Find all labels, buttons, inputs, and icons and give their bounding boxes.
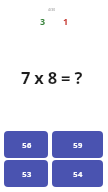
staticText: 59 xyxy=(73,140,83,150)
staticText: 4/30 xyxy=(48,7,56,12)
staticText: 53 xyxy=(22,169,32,179)
button[interactable]: 59 xyxy=(52,131,103,158)
button[interactable]: 56 xyxy=(4,131,48,158)
button[interactable]: 54 xyxy=(52,160,103,187)
staticText: 56 xyxy=(22,140,32,150)
staticText: 1 xyxy=(63,15,69,27)
staticText: 54 xyxy=(73,169,83,179)
staticText: 7 x 8 = ? xyxy=(21,66,83,88)
button[interactable]: 53 xyxy=(4,160,48,187)
staticText: 3 xyxy=(40,15,46,27)
